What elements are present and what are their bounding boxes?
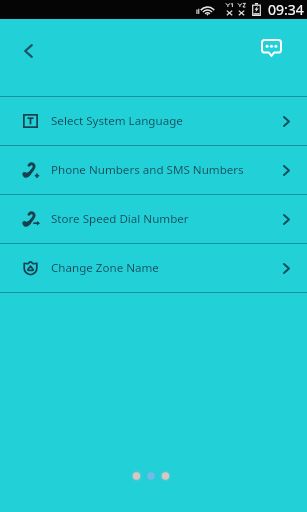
staticText: Select System Language <box>51 113 183 129</box>
button[interactable]: Messages <box>253 30 289 66</box>
staticText: Store Speed Dial Number <box>51 211 189 227</box>
button[interactable]: Store Speed Dial Number <box>0 195 307 243</box>
staticText: 09:34 <box>268 0 304 19</box>
staticText: Phone Numbers and SMS Numbers <box>51 162 244 178</box>
button[interactable]: Back <box>10 33 46 69</box>
button[interactable]: Change Zone Name <box>0 244 307 292</box>
staticText: Change Zone Name <box>51 260 159 276</box>
button[interactable]: Phone Numbers and SMS Numbers <box>0 146 307 194</box>
button[interactable]: Select System Language <box>0 97 307 145</box>
